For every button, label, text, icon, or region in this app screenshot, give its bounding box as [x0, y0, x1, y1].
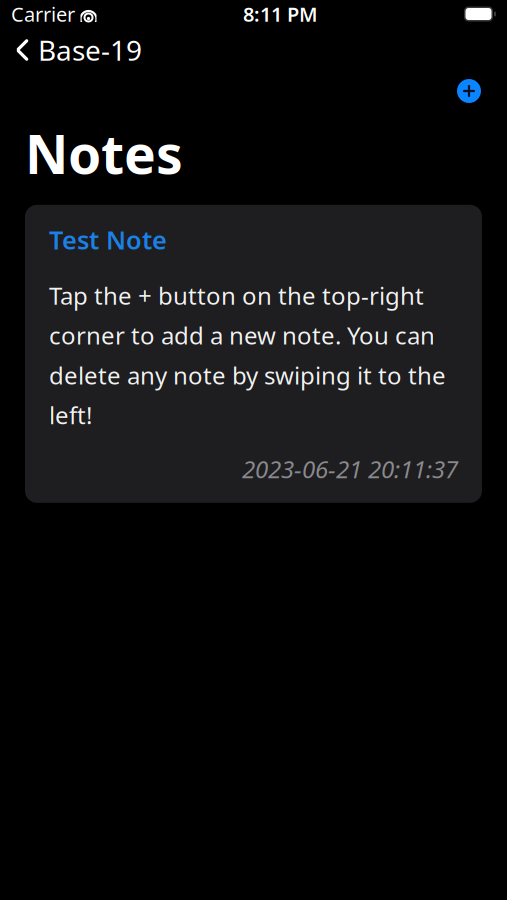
button[interactable]: Test Note	[25, 205, 482, 503]
staticText: Test Note	[49, 223, 167, 256]
staticText: Notes	[25, 118, 183, 189]
staticText: 2023-06-21 20:11:37	[242, 453, 458, 485]
staticText: Tap the + button on the top-right corner…	[49, 279, 446, 431]
button[interactable]: Add note	[447, 69, 491, 113]
staticText: 8:11 PM	[243, 1, 318, 27]
button[interactable]: Base-19	[0, 25, 142, 75]
staticText: Carrier	[11, 1, 75, 27]
staticText: Base-19	[38, 31, 142, 69]
